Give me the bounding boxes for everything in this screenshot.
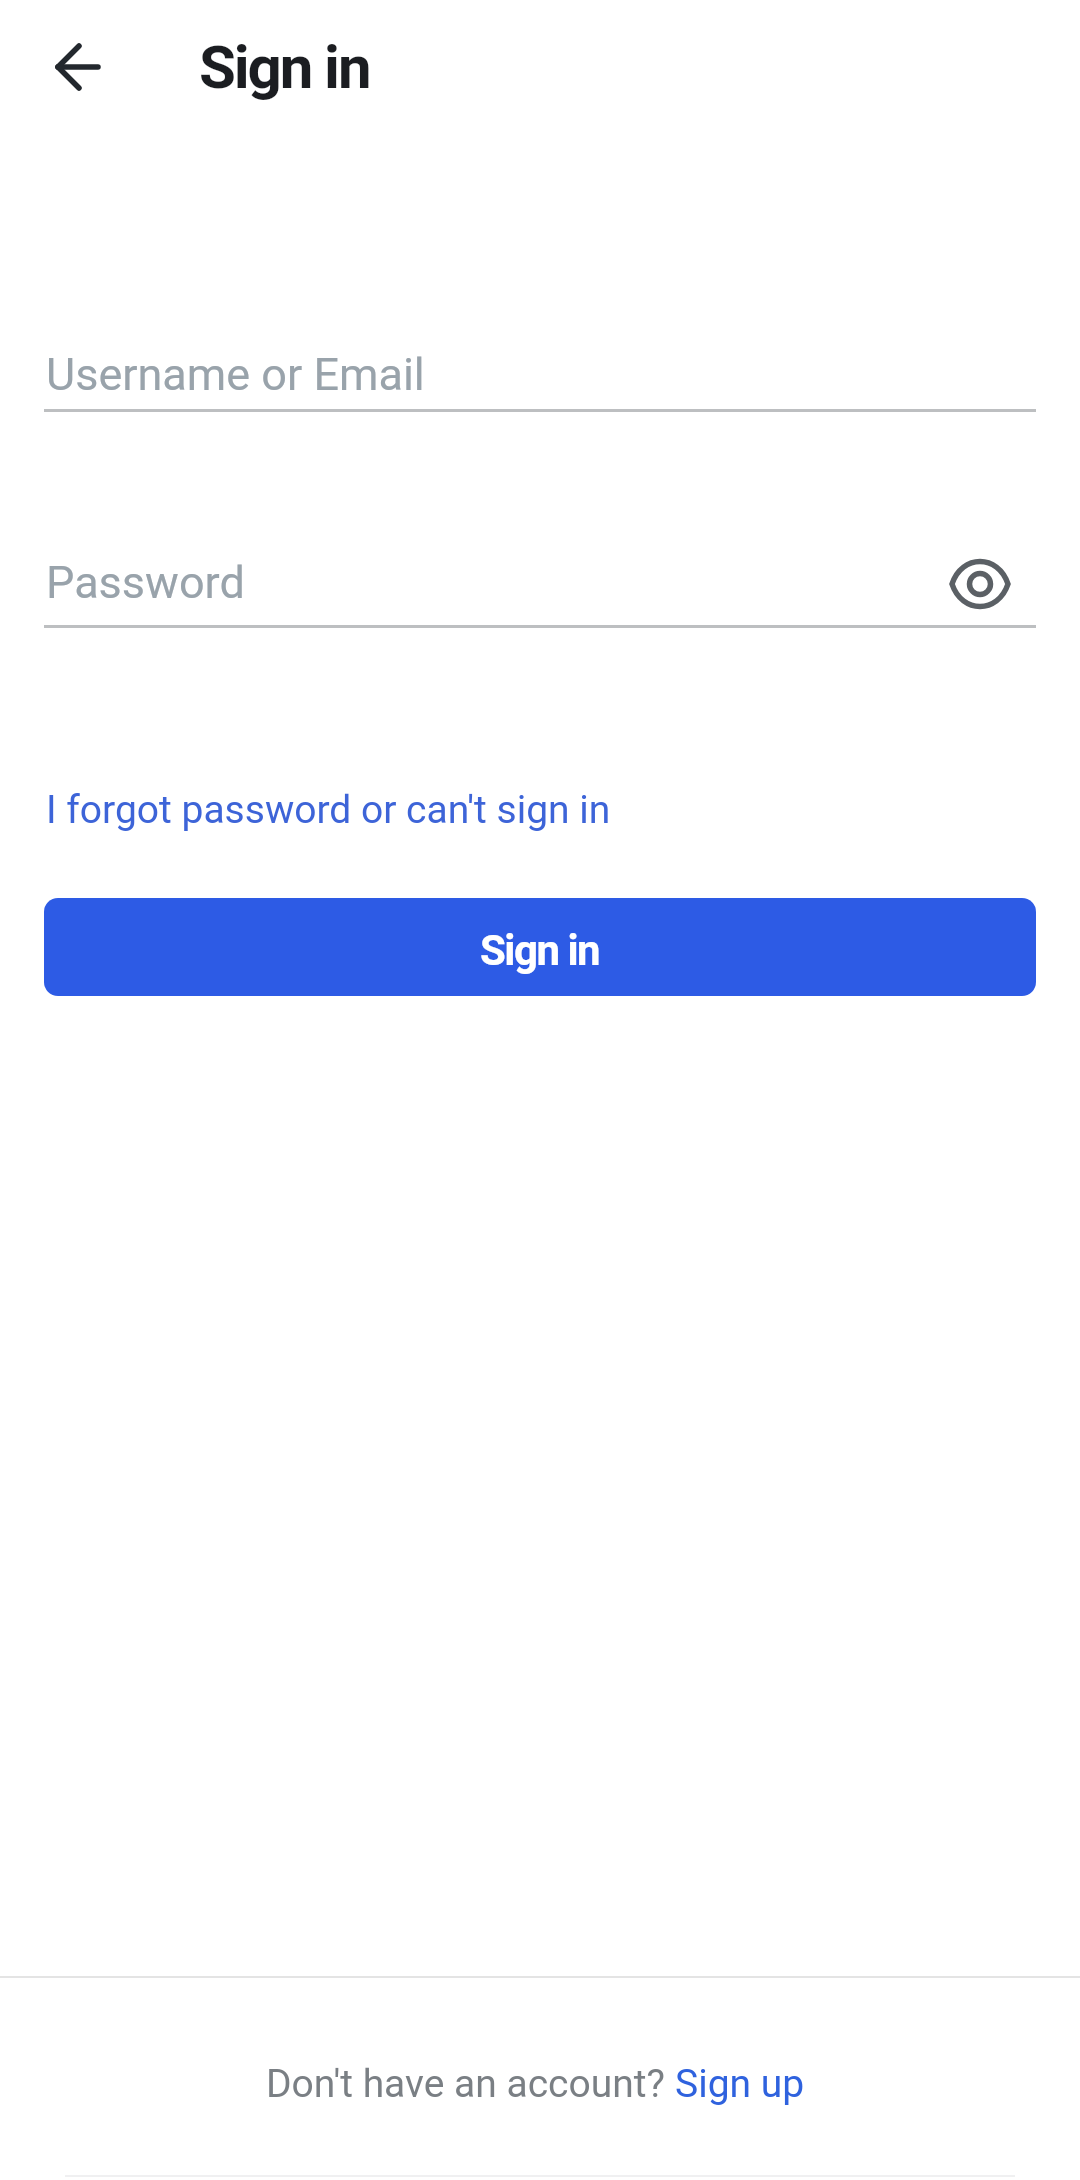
button[interactable]: I forgot password or can't sign in xyxy=(44,773,609,849)
staticText: I forgot password or can't sign in xyxy=(46,787,611,833)
staticText: Sign in xyxy=(480,926,600,975)
staticText: Password xyxy=(46,556,245,609)
staticText: Sign in xyxy=(199,32,370,102)
button[interactable] xyxy=(40,30,114,104)
button[interactable]: Username or Email xyxy=(44,336,1036,412)
button[interactable]: Password xyxy=(44,552,1036,628)
button[interactable] xyxy=(935,545,1025,623)
staticText: Username or Email xyxy=(46,348,425,401)
button[interactable]: Sign up xyxy=(675,2061,805,2107)
button[interactable]: Sign in xyxy=(44,898,1036,996)
staticText: Don't have an account? xyxy=(266,2061,675,2107)
staticText: Sign up xyxy=(675,2061,805,2107)
